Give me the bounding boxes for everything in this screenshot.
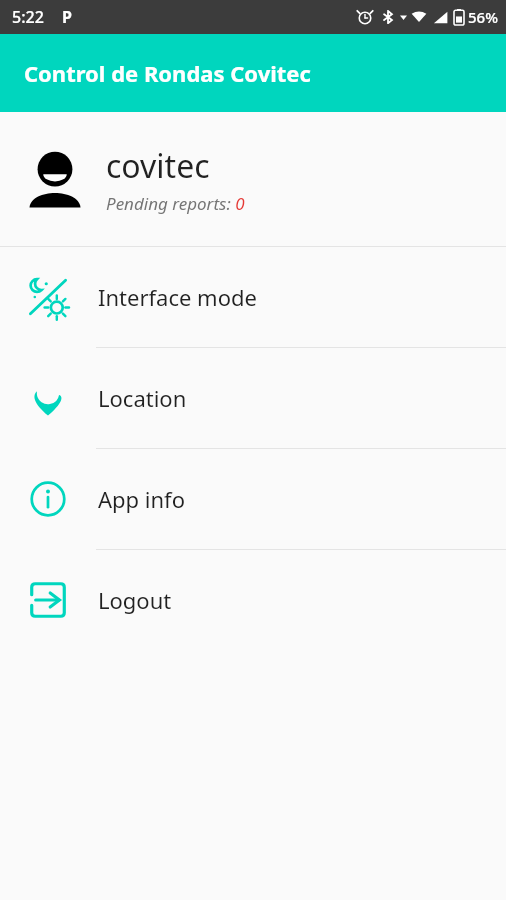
button[interactable]: covitec [0, 112, 506, 246]
staticText: P [62, 6, 72, 28]
other: Interface mode [26, 275, 70, 319]
button[interactable]: App info [0, 449, 506, 549]
other: Location [26, 376, 70, 420]
other: Logout [26, 578, 70, 622]
staticText: 56% [468, 7, 498, 27]
button[interactable]: Location [0, 348, 506, 448]
button[interactable]: Logout [0, 550, 506, 650]
staticText: Logout [98, 585, 172, 615]
staticText: Interface mode [98, 282, 257, 312]
button[interactable]: Interface mode [0, 247, 506, 347]
other: App info [26, 477, 70, 521]
staticText: 5:22 [12, 6, 44, 28]
staticText: Control de Rondas Covitec [24, 58, 311, 88]
staticText: Location [98, 383, 187, 413]
staticText: App info [98, 484, 185, 514]
staticText: covitec [106, 144, 210, 188]
staticText: Pending reports: 0 [106, 192, 245, 215]
